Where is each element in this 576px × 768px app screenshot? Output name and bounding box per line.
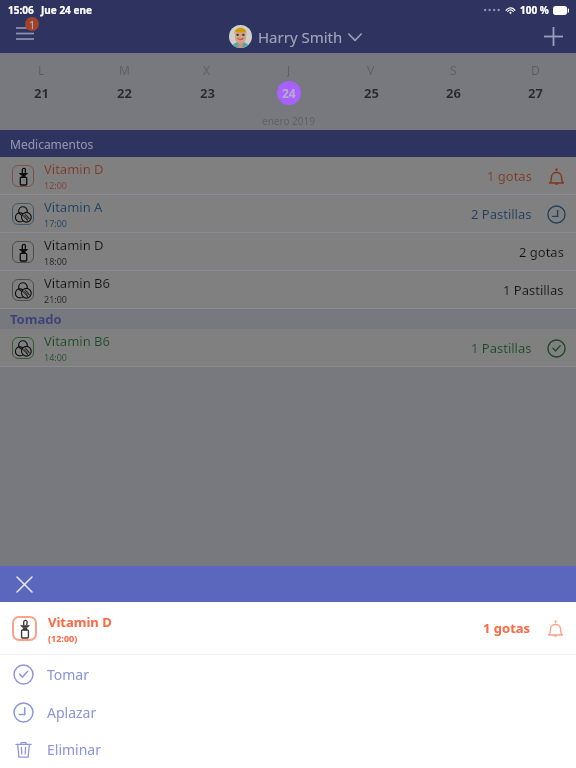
button[interactable]: Vitamin B6 — [0, 271, 576, 308]
button[interactable]: Reminder — [545, 618, 565, 638]
staticText: 1 Pastillas — [503, 281, 564, 299]
button[interactable]: CHECK — [546, 338, 566, 358]
staticText: Vitamin D — [48, 613, 112, 631]
staticText: enero 2019 — [262, 114, 315, 128]
staticText: 18:00 — [44, 255, 68, 267]
staticText: 1 — [29, 17, 36, 31]
staticText: 22 — [117, 84, 132, 102]
staticText: Tomar — [47, 665, 89, 684]
button[interactable]: Harry Smith — [229, 25, 362, 48]
staticText: 100 % — [520, 3, 549, 17]
button[interactable]: 21 — [0, 79, 83, 107]
button[interactable]: Tomar — [0, 655, 576, 693]
button[interactable]: Menu — [6, 19, 40, 53]
button[interactable]: Vitamin D — [0, 233, 576, 270]
button[interactable]: 24 — [248, 79, 330, 107]
button[interactable]: Eliminar — [0, 731, 576, 768]
staticText: 24 — [282, 85, 296, 101]
staticText: 14:00 — [44, 351, 68, 363]
button[interactable]: Vitamin A — [0, 195, 576, 232]
staticText: Eliminar — [47, 740, 101, 759]
button[interactable]: BELL — [546, 166, 566, 186]
staticText: Vitamin B6 — [44, 274, 110, 292]
staticText: 26 — [446, 84, 461, 102]
button[interactable]: 26 — [412, 79, 494, 107]
button[interactable]: Close — [11, 571, 37, 597]
staticText: 21:00 — [44, 293, 68, 305]
staticText: Jue 24 ene — [41, 3, 92, 17]
staticText: Vitamin A — [44, 198, 103, 216]
staticText: Harry Smith — [258, 27, 343, 47]
staticText: Vitamin D — [44, 236, 104, 254]
staticText: 23 — [200, 84, 215, 102]
staticText: 25 — [364, 84, 379, 102]
staticText: 27 — [528, 84, 543, 102]
staticText: 2 Pastillas — [471, 205, 532, 223]
button[interactable]: Vitamin D — [0, 157, 576, 194]
staticText: 15:06 — [8, 3, 34, 17]
staticText: L — [38, 62, 45, 77]
staticText: M — [119, 62, 130, 77]
button[interactable]: 27 — [494, 79, 576, 107]
staticText: 21 — [34, 84, 49, 102]
button[interactable]: 22 — [83, 79, 166, 107]
button[interactable]: CLOCK — [546, 204, 566, 224]
staticText: Aplazar — [47, 703, 97, 722]
staticText: D — [531, 62, 540, 77]
staticText: X — [203, 62, 211, 77]
button[interactable]: Vitamin B6 — [0, 329, 576, 366]
staticText: V — [367, 62, 375, 77]
button[interactable]: Vitamin D — [0, 602, 576, 654]
button[interactable]: 25 — [330, 79, 412, 107]
staticText: 1 Pastillas — [471, 339, 532, 357]
staticText: (12:00) — [48, 632, 78, 644]
staticText: 1 gotas — [483, 619, 531, 637]
button[interactable]: Aplazar — [0, 693, 576, 731]
staticText: Tomado — [10, 310, 62, 328]
staticText: 1 gotas — [487, 167, 532, 185]
staticText: J — [287, 62, 291, 77]
staticText: Vitamin B6 — [44, 332, 110, 350]
button[interactable]: Add — [538, 21, 568, 51]
staticText: 17:00 — [44, 217, 68, 229]
button[interactable]: 23 — [166, 79, 248, 107]
staticText: 12:00 — [44, 179, 68, 191]
staticText: S — [450, 62, 457, 77]
staticText: Vitamin D — [44, 160, 104, 178]
staticText: 2 gotas — [519, 243, 564, 261]
staticText: Medicamentos — [10, 136, 94, 152]
